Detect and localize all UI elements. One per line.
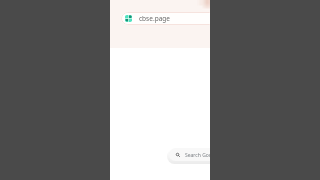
button[interactable]: Search <box>169 148 210 161</box>
other: Search <box>176 153 180 157</box>
staticText: cbse.page <box>139 14 170 23</box>
staticText: Search Google or type a URL <box>185 152 210 159</box>
button[interactable]: cbse.page <box>121 12 210 25</box>
